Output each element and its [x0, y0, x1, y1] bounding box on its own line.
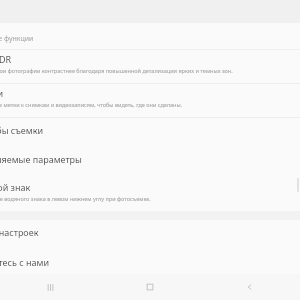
staticText: Сохраняемые параметры: [0, 153, 82, 165]
staticText: Сброс настроек: [0, 226, 39, 238]
button[interactable]: Auto HDR: [0, 50, 300, 83]
staticText: Полезные функции: [0, 34, 34, 44]
staticText: Свяжитесь с нами: [0, 256, 49, 268]
button[interactable]: Сброс настроек: [0, 220, 300, 251]
staticText: Auto HDR: [0, 53, 12, 65]
button[interactable]: Свяжитесь с нами: [0, 251, 300, 274]
staticText: Делайте свои фотографии контрастнее благ…: [0, 67, 233, 74]
staticText: Добавляйте метки к снимкам и видеозапися…: [0, 101, 183, 108]
button[interactable]: Recent apps: [0, 274, 100, 300]
staticText: Водяной знак: [0, 181, 31, 193]
button[interactable]: Водяной знак: [0, 178, 300, 211]
staticText: Способы съемки: [0, 124, 44, 136]
button[interactable]: Способы съемки: [0, 118, 300, 149]
button[interactable]: Home: [100, 274, 200, 300]
staticText: Добавление водяного знака в левом нижнем…: [0, 195, 151, 202]
button[interactable]: Геотеги: [0, 84, 300, 117]
staticText: Геотеги: [0, 87, 4, 99]
button[interactable]: Сохраняемые параметры: [0, 149, 300, 178]
